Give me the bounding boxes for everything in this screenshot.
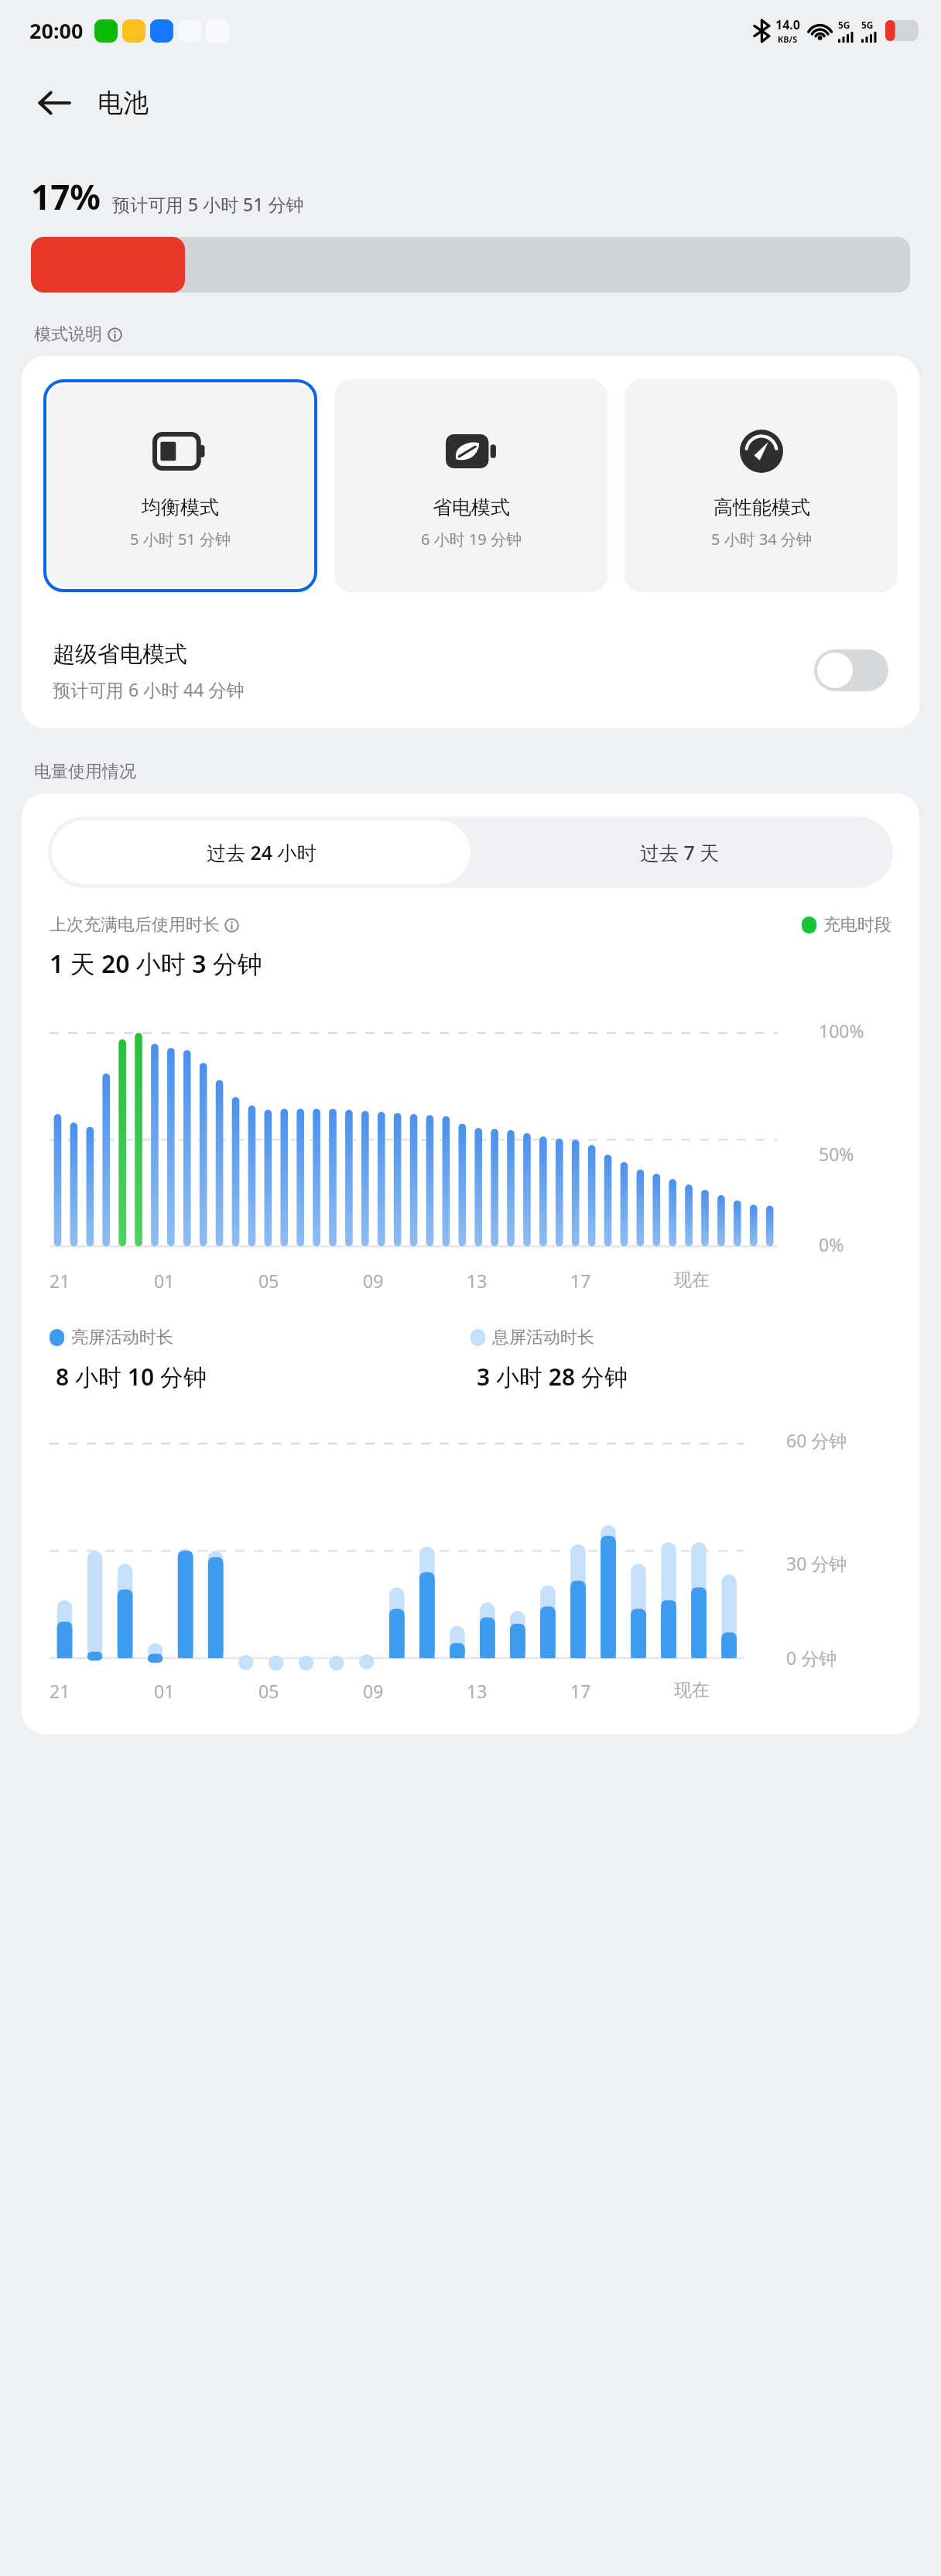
- staticText: 6 小时 19 分钟: [421, 529, 522, 550]
- staticText: 5G: [838, 19, 850, 31]
- staticText: 省电模式: [433, 495, 510, 519]
- staticText: 01: [154, 1679, 175, 1703]
- staticText: 高性能模式: [713, 495, 810, 519]
- staticText: KB/S: [778, 33, 798, 45]
- staticText: 上次充满电后使用时长: [50, 914, 220, 936]
- staticText: 17: [570, 1679, 591, 1703]
- staticText: 3 小时 28 分钟: [477, 1361, 628, 1392]
- button[interactable]: 省电模式: [334, 379, 607, 592]
- staticText: 05: [258, 1679, 279, 1703]
- staticText: 21: [50, 1679, 70, 1703]
- staticText: 过去 24 小时: [207, 839, 317, 865]
- staticText: 0 分钟: [786, 1646, 837, 1670]
- staticText: 现在: [674, 1679, 710, 1701]
- staticText: 21: [50, 1269, 70, 1293]
- staticText: 预计可用 6 小时 44 分钟: [53, 677, 245, 701]
- staticText: 0%: [819, 1232, 844, 1256]
- staticText: 8 小时 10 分钟: [56, 1361, 207, 1392]
- staticText: 100%: [819, 1019, 864, 1043]
- button[interactable]: 过去 7 天: [470, 820, 889, 884]
- staticText: 电量使用情况: [34, 761, 136, 783]
- staticText: 1 天 20 小时 3 分钟: [50, 947, 262, 981]
- button[interactable]: 超级省电模式: [22, 612, 919, 728]
- staticText: 亮屏活动时长: [71, 1327, 173, 1348]
- staticText: 14.0: [775, 16, 800, 33]
- staticText: 13: [467, 1679, 488, 1703]
- staticText: 过去 7 天: [640, 839, 720, 865]
- button[interactable]: Back: [26, 75, 82, 131]
- staticText: 预计可用 5 小时 51 分钟: [112, 192, 304, 216]
- staticText: 5 小时 34 分钟: [711, 529, 812, 550]
- staticText: 50%: [819, 1142, 854, 1166]
- staticText: 现在: [674, 1269, 710, 1291]
- button[interactable]: 超级省电模式 开关: [814, 649, 888, 691]
- button[interactable]: 均衡模式: [48, 384, 313, 587]
- staticText: 13: [467, 1269, 488, 1293]
- staticText: 17: [570, 1269, 591, 1293]
- button[interactable]: 过去 24 小时: [52, 820, 470, 884]
- staticText: 09: [363, 1269, 384, 1293]
- staticText: 超级省电模式: [53, 640, 187, 669]
- staticText: 5 小时 51 分钟: [130, 529, 231, 550]
- staticText: 05: [258, 1269, 279, 1293]
- staticText: 17%: [31, 173, 101, 220]
- staticText: 5G: [861, 19, 874, 31]
- staticText: 息屏活动时长: [492, 1327, 594, 1348]
- staticText: 20:00: [29, 16, 84, 45]
- staticText: 60 分钟: [786, 1428, 847, 1452]
- staticText: 模式说明: [34, 324, 102, 345]
- staticText: 01: [154, 1269, 175, 1293]
- staticText: 充电时段: [823, 914, 891, 936]
- button[interactable]: 高性能模式: [624, 379, 898, 592]
- staticText: 均衡模式: [142, 495, 219, 519]
- staticText: 电池: [98, 87, 149, 119]
- staticText: 09: [363, 1679, 384, 1703]
- staticText: 30 分钟: [786, 1551, 847, 1575]
